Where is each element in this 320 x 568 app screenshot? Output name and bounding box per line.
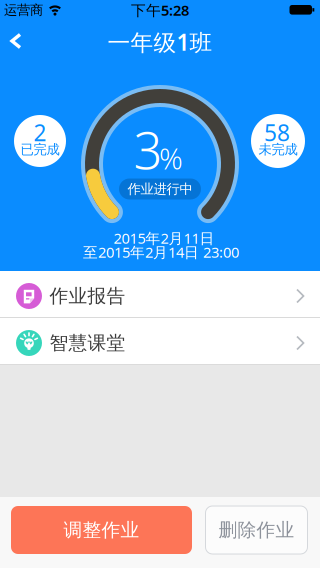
staticText: 58 bbox=[264, 117, 290, 147]
staticText: 下午5:28 bbox=[131, 0, 189, 20]
staticText: 3 bbox=[133, 116, 162, 183]
staticText: 智慧课堂 bbox=[49, 331, 125, 354]
staticText: 作业进行中 bbox=[127, 181, 192, 197]
staticText: 已完成 bbox=[20, 141, 59, 158]
staticText: 调整作业 bbox=[63, 518, 139, 541]
button[interactable]: 作业报告 bbox=[0, 271, 320, 317]
staticText: % bbox=[159, 138, 183, 177]
button[interactable]: 智慧课堂 bbox=[0, 318, 320, 364]
staticText: 至2015年2月14日 23:00 bbox=[83, 242, 239, 262]
staticText: 未完成 bbox=[258, 141, 297, 158]
button[interactable]: 删除作业 bbox=[205, 506, 307, 554]
staticText: 删除作业 bbox=[218, 518, 294, 541]
staticText: 2015年2月11日 bbox=[113, 228, 214, 248]
button[interactable]: 调整作业 bbox=[11, 506, 192, 554]
staticText: 2 bbox=[33, 117, 46, 147]
button[interactable]: Back bbox=[0, 20, 34, 64]
staticText: 作业报告 bbox=[49, 284, 125, 307]
staticText: 一年级1班 bbox=[107, 27, 212, 57]
staticText: 运营商 bbox=[4, 2, 43, 18]
